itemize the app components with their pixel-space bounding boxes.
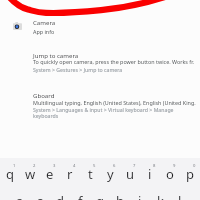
staticText: k <box>157 192 164 200</box>
staticText: t <box>88 165 93 183</box>
staticText: 2 <box>33 163 36 169</box>
staticText: l <box>178 192 182 200</box>
staticText: To quickly open camera, press the power … <box>33 58 194 65</box>
staticText: Gboard <box>33 91 55 99</box>
staticText: System > Languages & input > Virtual key… <box>33 106 174 113</box>
staticText: App info <box>33 28 55 35</box>
button[interactable]: Jump to camera <box>0 50 200 76</box>
staticText: u <box>126 165 135 183</box>
button[interactable]: 1 <box>0 162 20 184</box>
staticText: a <box>16 192 24 200</box>
button[interactable]: h <box>110 192 130 200</box>
staticText: keyboards <box>33 112 59 119</box>
staticText: 5 <box>93 163 96 169</box>
button[interactable]: d <box>50 192 70 200</box>
button[interactable]: l <box>170 192 190 200</box>
staticText: w <box>25 165 36 183</box>
staticText: 1 <box>13 163 16 169</box>
button[interactable]: j <box>130 192 150 200</box>
staticText: 8 <box>153 163 156 169</box>
button[interactable]: Camera app icon <box>0 16 200 37</box>
staticText: 4 <box>73 163 76 169</box>
staticText: p <box>186 165 194 183</box>
staticText: 9 <box>173 163 176 169</box>
staticText: j <box>138 192 142 200</box>
staticText: s <box>37 192 44 200</box>
staticText: 6 <box>113 163 116 169</box>
button[interactable]: 3 <box>40 162 60 184</box>
staticText: r <box>67 165 73 183</box>
staticText: y <box>107 165 114 183</box>
staticText: 7 <box>133 163 136 169</box>
staticText: Jump to camera <box>33 51 79 59</box>
staticText: 0 <box>193 163 196 169</box>
button[interactable]: k <box>150 192 170 200</box>
other: Camera app icon <box>13 22 22 30</box>
button[interactable]: 4 <box>60 162 80 184</box>
button[interactable]: a <box>10 192 30 200</box>
staticText: g <box>96 192 104 200</box>
staticText: q <box>6 165 14 183</box>
staticText: f <box>78 192 83 200</box>
staticText: 3 <box>53 163 56 169</box>
button[interactable]: 9 <box>160 162 180 184</box>
staticText: h <box>116 192 125 200</box>
staticText: e <box>46 165 54 183</box>
staticText: Multilingual typing, English (United Sta… <box>33 99 196 106</box>
staticText: o <box>166 165 174 183</box>
button[interactable]: 8 <box>140 162 160 184</box>
button[interactable]: 0 <box>180 162 200 184</box>
staticText: i <box>148 165 152 183</box>
button[interactable]: 7 <box>120 162 140 184</box>
staticText: d <box>56 192 64 200</box>
button[interactable]: 5 <box>80 162 100 184</box>
staticText: System > Gestures > Jump to camera <box>33 66 123 73</box>
button[interactable]: s <box>30 192 50 200</box>
button[interactable]: g <box>90 192 110 200</box>
button[interactable]: f <box>70 192 90 200</box>
button[interactable]: 6 <box>100 162 120 184</box>
button[interactable]: Gboard <box>0 90 200 123</box>
staticText: Camera <box>33 18 56 26</box>
button[interactable]: 2 <box>20 162 40 184</box>
